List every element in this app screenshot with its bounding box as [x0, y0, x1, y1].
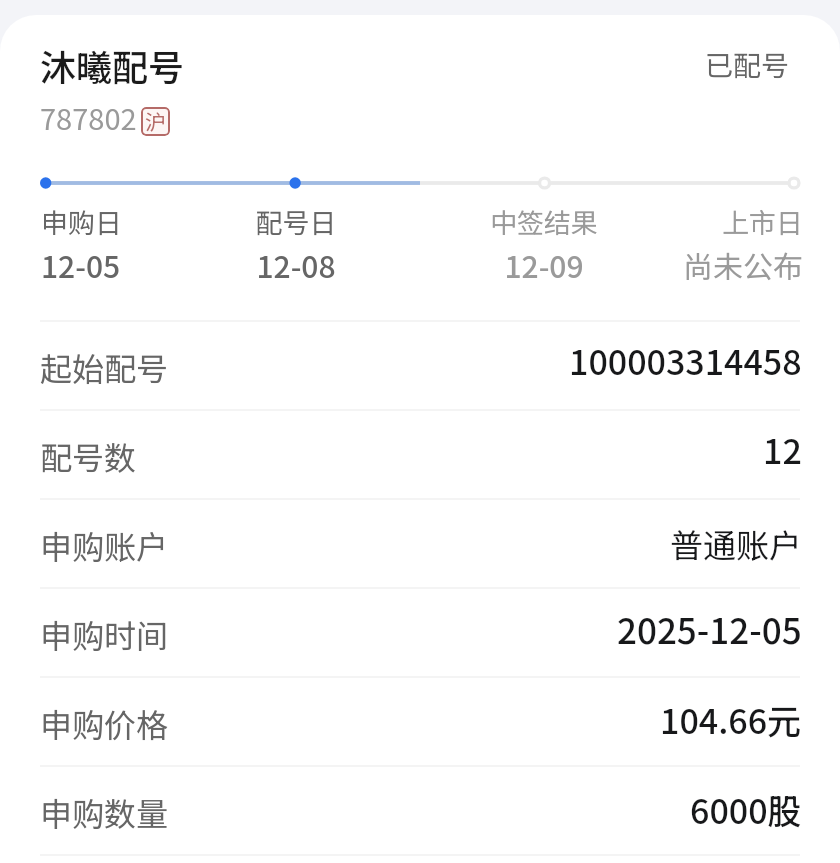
button[interactable]: 申购时间 [0, 589, 840, 676]
staticText: 申购价格 [40, 700, 169, 746]
button[interactable] [0, 15, 840, 155]
staticText: 申购日 [41, 202, 241, 241]
staticText: 申购数量 [40, 789, 169, 835]
staticText: 中签结果 [444, 202, 644, 241]
staticText: 104.66元 [660, 695, 802, 744]
staticText: 12 [763, 425, 802, 474]
staticText: 普通账户 [670, 520, 802, 568]
button[interactable]: 申购数量 [0, 767, 840, 854]
staticText: 申购账户 [40, 522, 169, 568]
staticText: 上市日 [603, 202, 803, 241]
staticText: 配号日 [196, 202, 396, 241]
button[interactable]: 配号数 [0, 411, 840, 498]
staticText: 申购时间 [40, 611, 169, 657]
staticText: 配号数 [40, 433, 137, 479]
staticText: 100003314458 [569, 336, 802, 385]
button[interactable]: 申购账户 [0, 500, 840, 587]
staticText: 沪 [145, 107, 166, 135]
staticText: 已配号 [705, 44, 790, 85]
staticText: 2025-12-05 [617, 603, 802, 654]
button[interactable]: 申购价格 [0, 678, 840, 765]
staticText: 12-08 [196, 243, 396, 286]
staticText: 787802 [40, 96, 137, 138]
button[interactable]: 起始配号 [0, 322, 840, 409]
staticText: 6000股 [690, 785, 802, 834]
staticText: 尚未公布 [603, 243, 803, 286]
staticText: 沐曦配号 [40, 39, 185, 91]
staticText: 12-09 [444, 243, 644, 286]
staticText: 12-05 [41, 243, 241, 286]
staticText: 起始配号 [40, 344, 169, 390]
